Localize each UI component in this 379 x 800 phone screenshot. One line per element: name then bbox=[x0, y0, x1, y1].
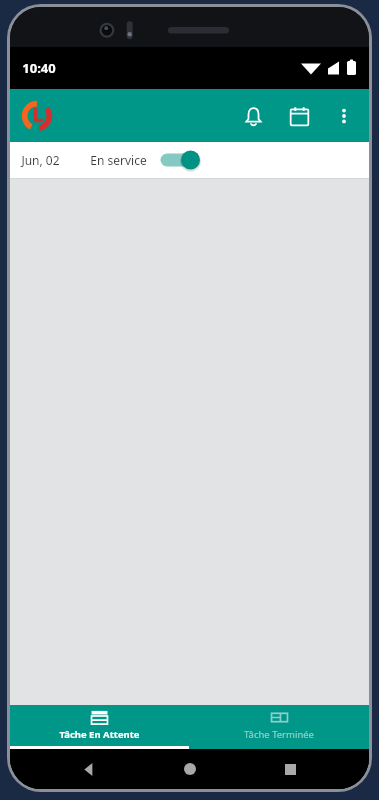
staticText: En service bbox=[90, 152, 147, 168]
button[interactable]: Back bbox=[67, 749, 111, 789]
button[interactable]: Tâche En Attente bbox=[10, 705, 189, 746]
staticText: Jun, 02 bbox=[21, 152, 60, 168]
staticText: 10:40 bbox=[22, 59, 56, 77]
button[interactable]: Tâche Terminée bbox=[189, 705, 369, 746]
staticText: Tâche En Attente bbox=[59, 728, 140, 741]
button[interactable]: App logo bbox=[19, 98, 55, 134]
button[interactable]: Notifications bbox=[230, 93, 276, 139]
staticText: Tâche Terminée bbox=[244, 728, 314, 741]
button[interactable]: More options bbox=[322, 94, 366, 138]
button[interactable]: Recent apps bbox=[268, 749, 312, 789]
button[interactable]: Home bbox=[168, 749, 212, 789]
button[interactable]: En service toggle bbox=[157, 147, 197, 173]
button[interactable]: Calendar bbox=[276, 93, 322, 139]
